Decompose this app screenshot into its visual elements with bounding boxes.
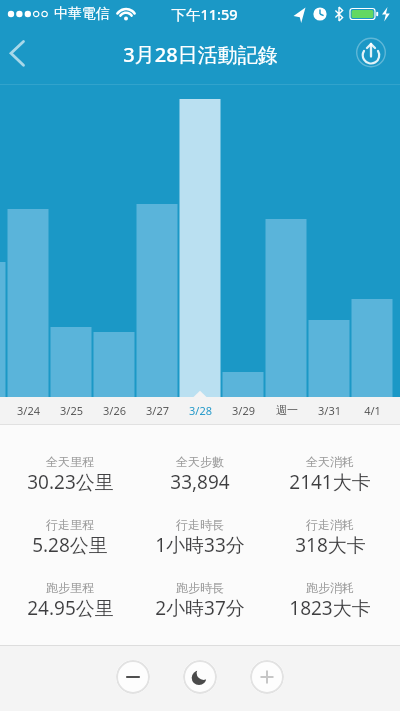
staticText: 行走消耗 [306,517,354,532]
staticText: 3/27 [146,403,169,418]
staticText: 3/29 [232,403,255,418]
staticText: 2小時37分 [155,595,245,621]
staticText: 30.23公里 [27,469,114,495]
button[interactable] [116,660,150,694]
button[interactable] [0,28,40,85]
staticText: 4/1 [364,403,381,418]
staticText: 2141大卡 [289,469,371,495]
staticText: 3/24 [17,403,40,418]
button[interactable]: 3/24 [7,397,50,423]
staticText: 中華電信 [54,5,110,23]
staticText: 318大卡 [295,532,366,558]
button[interactable]: 4/1 [351,397,394,423]
staticText: 全天里程 [46,454,94,469]
staticText: 3/31 [318,403,341,418]
button[interactable]: 3/29 [222,397,265,423]
staticText: 跑步里程 [46,580,94,595]
button[interactable]: 3/25 [50,397,93,423]
staticText: 行走里程 [46,517,94,532]
staticText: 下午11:59 [171,4,238,24]
button[interactable]: 3/26 [93,397,136,423]
button[interactable] [183,660,217,694]
button[interactable] [355,36,388,69]
staticText: 3/26 [103,403,126,418]
staticText: 5.28公里 [32,532,108,558]
staticText: 1小時33分 [155,532,245,558]
button[interactable]: 3/31 [308,397,351,423]
button[interactable]: 週一 [265,397,308,423]
staticText: 跑步時長 [176,580,224,595]
staticText: 33,894 [170,469,230,495]
staticText: 1823大卡 [289,595,371,621]
staticText: 3/25 [60,403,83,418]
staticText: 週一 [276,403,298,417]
staticText: 行走時長 [176,517,224,532]
button[interactable]: 3/28 [179,397,222,423]
staticText: 3月28日活動記錄 [123,41,278,67]
staticText: 全天消耗 [306,454,354,469]
staticText: 3/28 [189,403,212,418]
staticText: 24.95公里 [27,595,114,621]
staticText: 全天步數 [176,454,224,469]
button[interactable]: 3/27 [136,397,179,423]
button[interactable] [250,660,284,694]
staticText: 跑步消耗 [306,580,354,595]
